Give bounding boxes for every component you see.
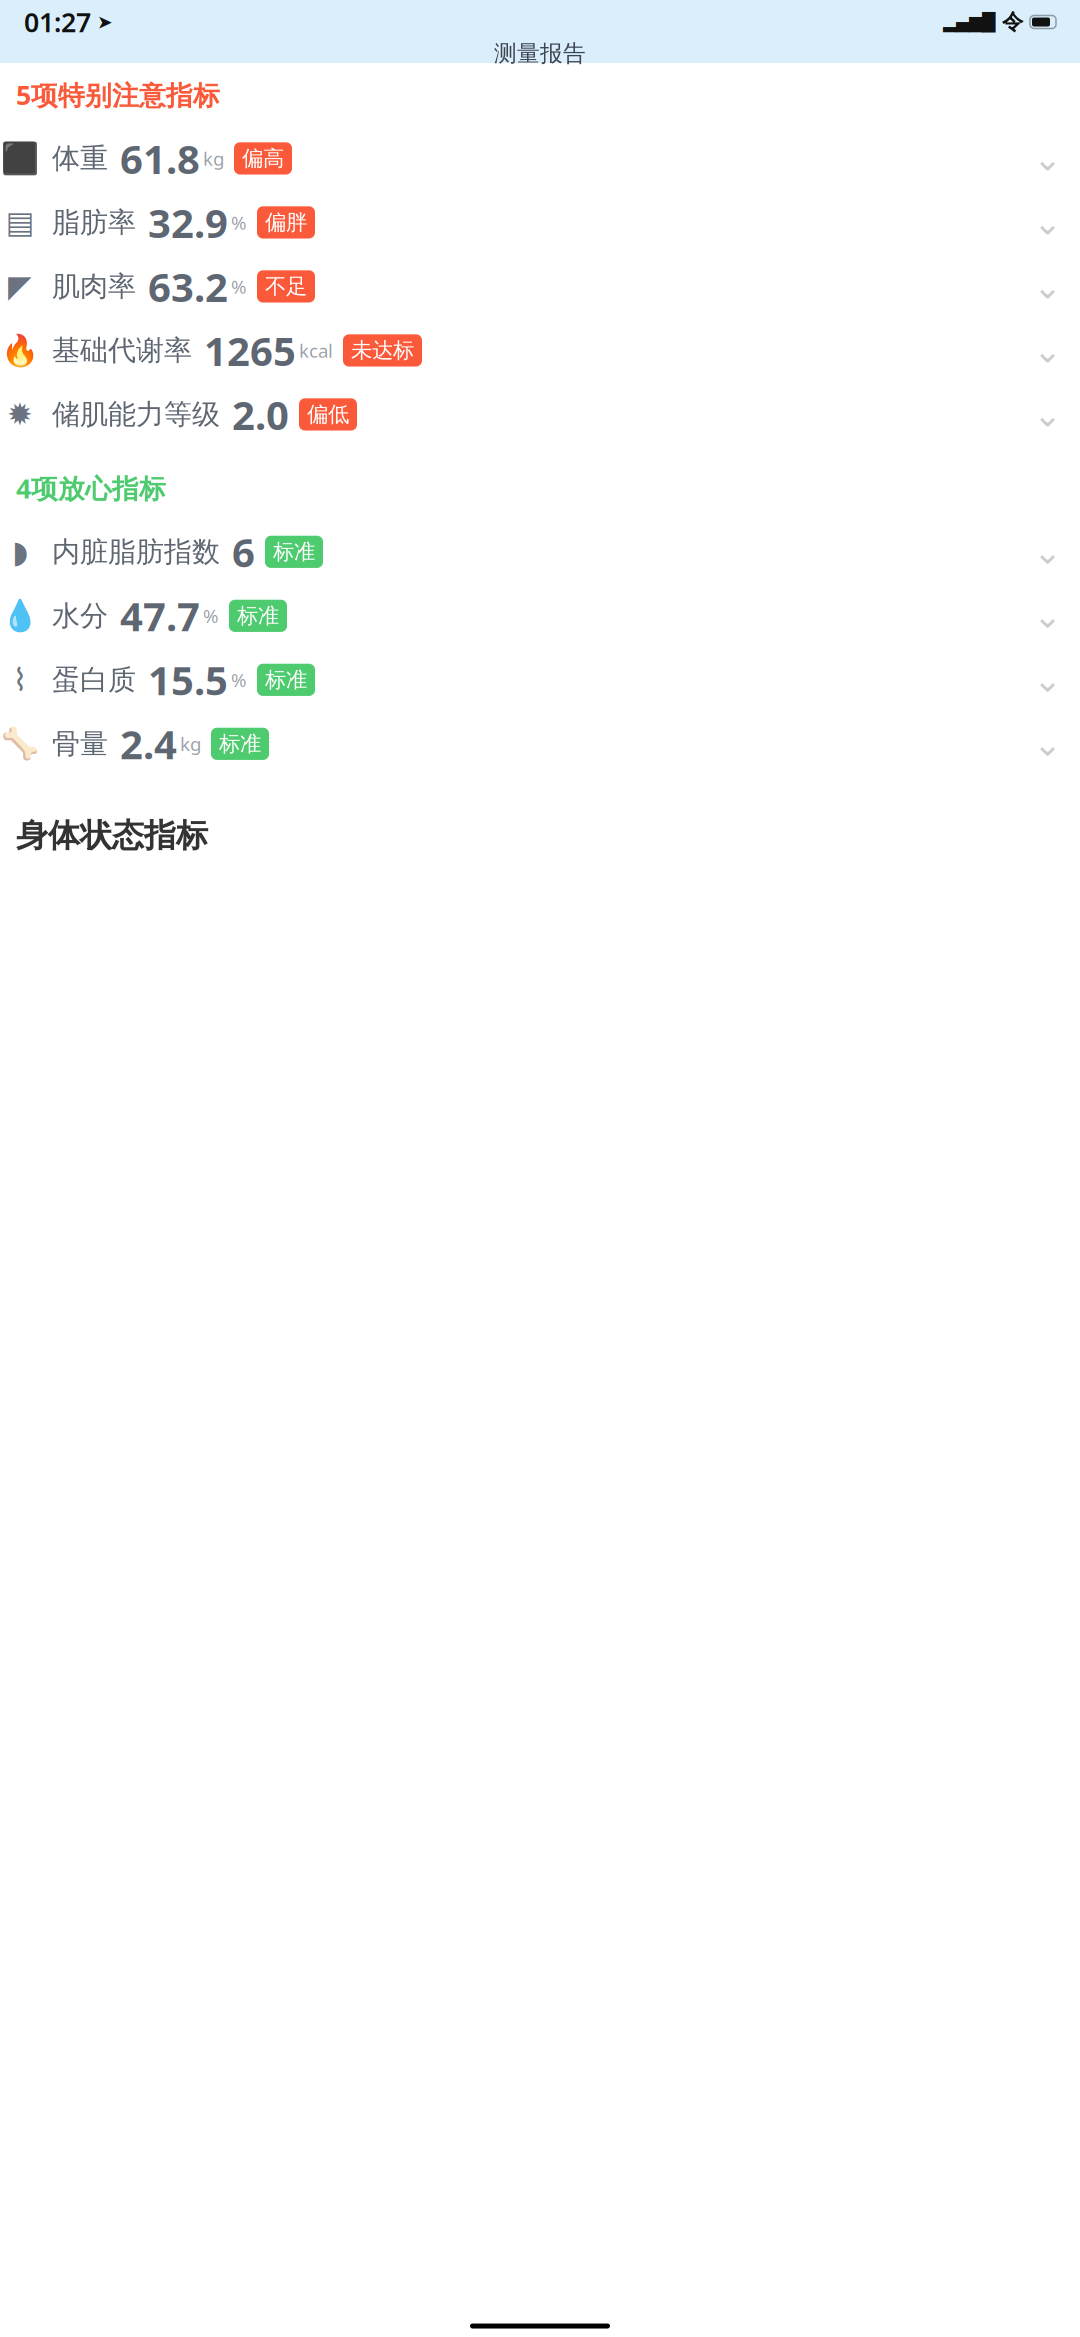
staticText: 🔥	[1, 333, 39, 368]
staticText: ⬛	[1, 141, 39, 176]
staticText: 肌肉率	[52, 269, 136, 304]
staticText: ⌄	[1033, 395, 1062, 434]
staticText: 不足	[265, 273, 307, 299]
button[interactable]: ⌇	[0, 648, 1080, 712]
staticText: 身体状态指标	[16, 816, 208, 855]
staticText: ⌄	[1033, 267, 1062, 306]
staticText: 2.0	[232, 388, 289, 441]
staticText: 测量报告	[494, 40, 586, 67]
staticText: 15.5	[148, 653, 228, 706]
staticText: ⌄	[1033, 660, 1062, 699]
staticText: 偏胖	[265, 209, 307, 235]
staticText: ⌄	[1033, 532, 1062, 571]
staticText: 61.8	[120, 132, 200, 185]
staticText: ⌄	[1033, 203, 1062, 242]
staticText: ✹	[7, 397, 33, 432]
staticText: ⌄	[1033, 331, 1062, 370]
staticText: ⌄	[1033, 724, 1062, 763]
staticText: 脂肪率	[52, 205, 136, 240]
staticText: ⌄	[1033, 139, 1062, 178]
staticText: ⌇	[12, 662, 27, 697]
button[interactable]: ⬛	[0, 126, 1080, 190]
staticText: 标准	[237, 603, 279, 629]
staticText: 🦴	[1, 726, 39, 761]
staticText: 体重	[52, 141, 108, 176]
staticText: 01:27	[24, 4, 91, 40]
staticText: 未达标	[351, 337, 414, 363]
staticText: ▤	[5, 205, 34, 240]
staticText: ◤	[8, 269, 32, 304]
button[interactable]: 💧	[0, 584, 1080, 648]
staticText: 63.2	[148, 260, 228, 313]
staticText: kcal	[299, 338, 333, 363]
staticText: 6	[232, 525, 255, 578]
staticText: 标准	[273, 539, 315, 565]
button[interactable]: ◗	[0, 520, 1080, 584]
staticText: 5项特别注意指标	[16, 77, 220, 112]
staticText: %	[203, 603, 219, 628]
button[interactable]: 🔥	[0, 318, 1080, 382]
staticText: %	[231, 274, 247, 299]
staticText: 偏低	[307, 401, 349, 427]
staticText: 32.9	[148, 196, 228, 249]
button[interactable]: ▤	[0, 190, 1080, 254]
staticText: kg	[203, 146, 224, 171]
staticText: %	[231, 667, 247, 692]
staticText: ➤	[97, 11, 113, 33]
button[interactable]: ◤	[0, 254, 1080, 318]
button[interactable]: 🦴	[0, 712, 1080, 776]
staticText: 储肌能力等级	[52, 397, 220, 432]
staticText: ⌄	[1033, 596, 1062, 635]
staticText: ▂▄▆█	[943, 12, 995, 32]
staticText: 2.4	[120, 717, 177, 770]
staticText: 标准	[219, 731, 261, 757]
staticText: 1265	[204, 324, 296, 377]
staticText: 蛋白质	[52, 663, 136, 697]
staticText: 水分	[52, 599, 108, 633]
staticText: 骨量	[52, 727, 108, 761]
staticText: 令	[1002, 9, 1023, 35]
staticText: ◗	[12, 534, 28, 569]
staticText: 4项放心指标	[16, 470, 166, 506]
staticText: 内脏脂肪指数	[52, 535, 220, 569]
staticText: 标准	[265, 667, 307, 693]
staticText: %	[231, 210, 247, 235]
button[interactable]: ✹	[0, 382, 1080, 446]
staticText: kg	[180, 731, 201, 756]
staticText: 偏高	[242, 145, 284, 171]
staticText: 基础代谢率	[52, 333, 192, 368]
staticText: 💧	[1, 598, 39, 633]
staticText: 47.7	[120, 589, 200, 642]
